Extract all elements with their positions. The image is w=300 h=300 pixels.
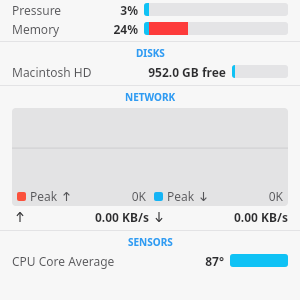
staticText: 3% <box>98 2 138 18</box>
button[interactable]: Peak <box>12 108 288 206</box>
staticText: 0.00 KB/s <box>26 209 149 225</box>
button[interactable]: 0.00 KB/s <box>0 206 300 228</box>
staticText: CPU Core Average <box>12 253 172 269</box>
staticText: 0K <box>72 188 146 204</box>
staticText: Peak <box>167 188 195 204</box>
button[interactable]: Macintosh HD <box>0 62 300 81</box>
staticText: 952.0 GB free <box>128 64 226 80</box>
staticText: Peak <box>30 188 58 204</box>
staticText: 0.00 KB/s <box>165 209 288 225</box>
staticText: 0K <box>209 188 283 204</box>
staticText: 87° <box>172 253 224 269</box>
staticText: SENSORS <box>128 235 173 249</box>
staticText: 24% <box>98 21 138 37</box>
staticText: DISKS <box>136 46 165 60</box>
staticText: Macintosh HD <box>12 64 128 80</box>
staticText: NETWORK <box>125 90 176 104</box>
staticText: Pressure <box>12 2 98 18</box>
button[interactable]: Memory <box>0 20 300 37</box>
button[interactable]: CPU Core Average <box>0 251 300 270</box>
staticText: Memory <box>12 21 98 37</box>
button[interactable]: Pressure <box>0 1 300 18</box>
